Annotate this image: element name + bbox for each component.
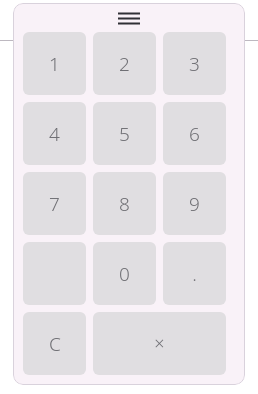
staticText: C <box>49 331 61 357</box>
staticText: 8 <box>119 191 130 217</box>
button[interactable]: 0 <box>93 242 156 305</box>
staticText: 4 <box>49 121 60 147</box>
button[interactable]: 7 <box>23 172 86 235</box>
button[interactable]: . <box>163 242 226 305</box>
staticText: 7 <box>49 191 60 217</box>
staticText: 9 <box>189 191 200 217</box>
staticText: 2 <box>119 51 130 77</box>
staticText: 3 <box>189 51 200 77</box>
button[interactable]: 4 <box>23 102 86 165</box>
staticText: 0 <box>119 261 130 287</box>
staticText: 1 <box>49 51 60 77</box>
staticText: . <box>192 261 197 287</box>
button[interactable]: 8 <box>93 172 156 235</box>
button[interactable]: 2 <box>93 32 156 95</box>
staticText: 5 <box>119 121 130 147</box>
button[interactable]: 3 <box>163 32 226 95</box>
staticText: 6 <box>189 121 200 147</box>
button[interactable]: 9 <box>163 172 226 235</box>
button[interactable]: 1 <box>23 32 86 95</box>
button[interactable]: × <box>93 312 226 375</box>
button[interactable]: Menu <box>114 7 144 29</box>
button[interactable]: 5 <box>93 102 156 165</box>
staticText: × <box>154 331 165 356</box>
button[interactable]: 6 <box>163 102 226 165</box>
button[interactable]: C <box>23 312 86 375</box>
